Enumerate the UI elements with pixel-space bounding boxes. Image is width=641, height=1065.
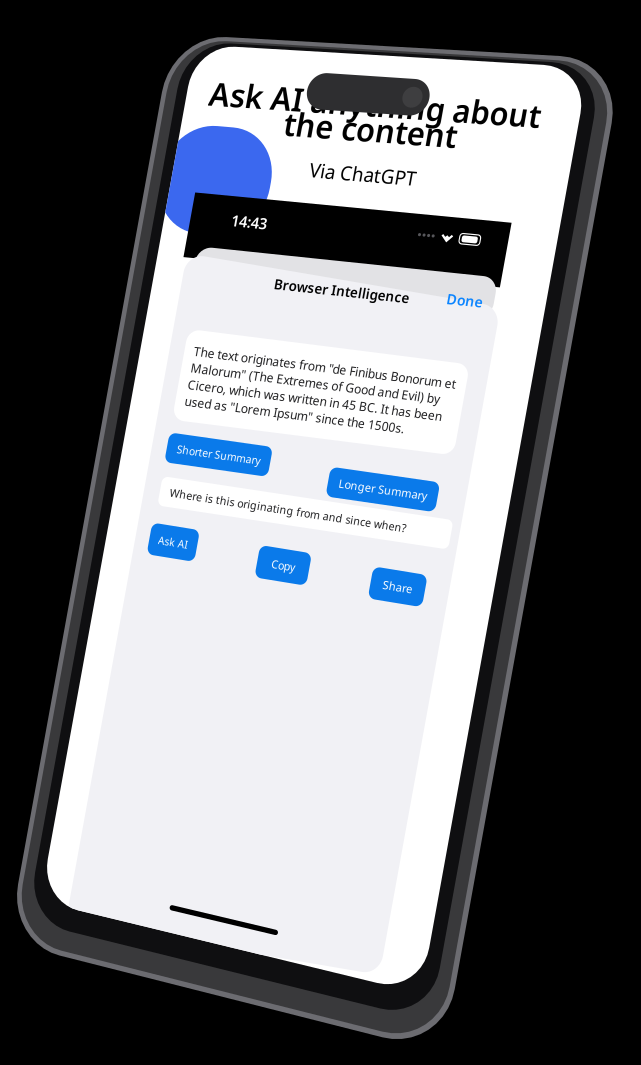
staticText: Shorter Summary xyxy=(180,440,268,454)
staticText: Where is this originating from and since… xyxy=(173,483,414,497)
staticText: The text originates from "de Finibus Bon… xyxy=(196,342,462,406)
staticText: Longer Summary xyxy=(341,474,428,488)
button[interactable]: Done xyxy=(442,286,490,308)
staticText: Browser Intelligence xyxy=(277,265,414,282)
button[interactable]: Longer Summary xyxy=(331,467,439,495)
staticText: Done xyxy=(449,288,484,306)
staticText: Copy xyxy=(275,553,299,568)
staticText: Share xyxy=(385,574,414,588)
staticText: the content xyxy=(289,95,463,136)
button[interactable]: Copy xyxy=(260,545,313,576)
staticText: Ask AI anything about xyxy=(214,71,547,112)
staticText: Ask AI xyxy=(162,531,194,545)
button[interactable]: Ask AI xyxy=(152,523,203,554)
staticText: Via ChatGPT xyxy=(313,146,420,171)
staticText: 14:43 xyxy=(236,205,272,225)
button[interactable]: Share xyxy=(373,566,426,596)
button[interactable]: Shorter Summary xyxy=(170,432,279,461)
